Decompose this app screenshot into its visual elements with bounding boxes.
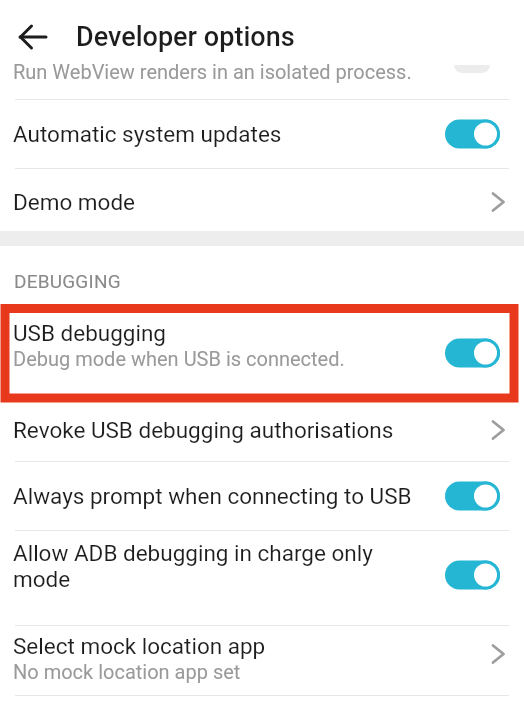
staticText: Demo mode bbox=[13, 189, 136, 215]
staticText: No mock location app set bbox=[13, 660, 241, 683]
staticText: Allow ADB debugging in charge only bbox=[13, 540, 373, 566]
staticText: Developer options bbox=[76, 21, 295, 53]
button[interactable]: Revoke USB debugging authorisations bbox=[0, 402, 524, 461]
staticText: mode bbox=[13, 566, 71, 592]
staticText: DEBUGGING bbox=[14, 270, 121, 292]
staticText: USB debugging bbox=[13, 320, 167, 346]
button[interactable]: Allow ADB debugging in charge only bbox=[0, 531, 524, 625]
button[interactable]: USB debugging bbox=[0, 304, 524, 402]
button[interactable]: Automatic system updates bbox=[0, 100, 524, 168]
button[interactable] bbox=[18, 24, 48, 50]
staticText: Automatic system updates bbox=[13, 121, 282, 147]
staticText: Select mock location app bbox=[13, 633, 266, 659]
staticText: Always prompt when connecting to USB bbox=[13, 483, 412, 509]
staticText: Run WebView renders in an isolated proce… bbox=[13, 60, 412, 83]
staticText: Revoke USB debugging authorisations bbox=[13, 417, 394, 443]
button[interactable]: Select mock location app bbox=[0, 626, 524, 695]
staticText: Debug mode when USB is connected. bbox=[13, 347, 345, 370]
button[interactable]: Demo mode bbox=[0, 169, 524, 231]
button[interactable]: Always prompt when connecting to USB bbox=[0, 462, 524, 530]
